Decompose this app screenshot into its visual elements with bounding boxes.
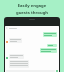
button[interactable] [6, 48, 58, 53]
button[interactable]: Back [6, 27, 8, 29]
button[interactable] [6, 32, 58, 37]
button[interactable] [6, 38, 58, 43]
button[interactable]: Send [5, 69, 59, 72]
staticText: guests through [3, 10, 61, 16]
button[interactable] [6, 60, 58, 68]
button[interactable] [6, 54, 58, 59]
button[interactable] [6, 44, 58, 47]
staticText: Easily engage [3, 3, 61, 9]
button[interactable]: Back [5, 26, 59, 30]
staticText: text messaging [3, 17, 61, 23]
